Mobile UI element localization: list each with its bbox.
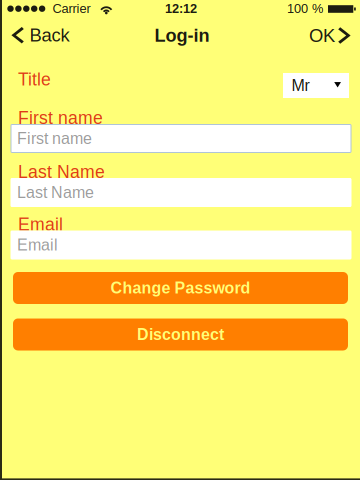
button[interactable]: OK <box>301 19 359 51</box>
staticText: First name <box>17 130 92 147</box>
staticText: 12:12 <box>165 1 197 16</box>
button[interactable]: Disconnect <box>13 318 348 350</box>
staticText: Last Name <box>18 162 105 182</box>
staticText: Carrier <box>52 1 90 16</box>
button[interactable]: Change Password <box>13 272 348 304</box>
staticText: 100 % <box>287 1 323 16</box>
staticText: Back <box>29 25 69 45</box>
staticText: OK <box>309 25 335 46</box>
button[interactable]: Back <box>3 19 77 51</box>
staticText: Title <box>18 70 51 89</box>
staticText: Last Name <box>17 184 94 201</box>
staticText: Log-in <box>154 25 209 46</box>
staticText: Mr <box>291 77 309 94</box>
button[interactable]: Mr <box>283 73 349 98</box>
staticText: Email <box>17 236 58 254</box>
staticText: Disconnect <box>137 326 224 343</box>
staticText: Email <box>18 215 63 234</box>
staticText: First name <box>18 108 103 128</box>
staticText: Change Password <box>110 279 250 297</box>
